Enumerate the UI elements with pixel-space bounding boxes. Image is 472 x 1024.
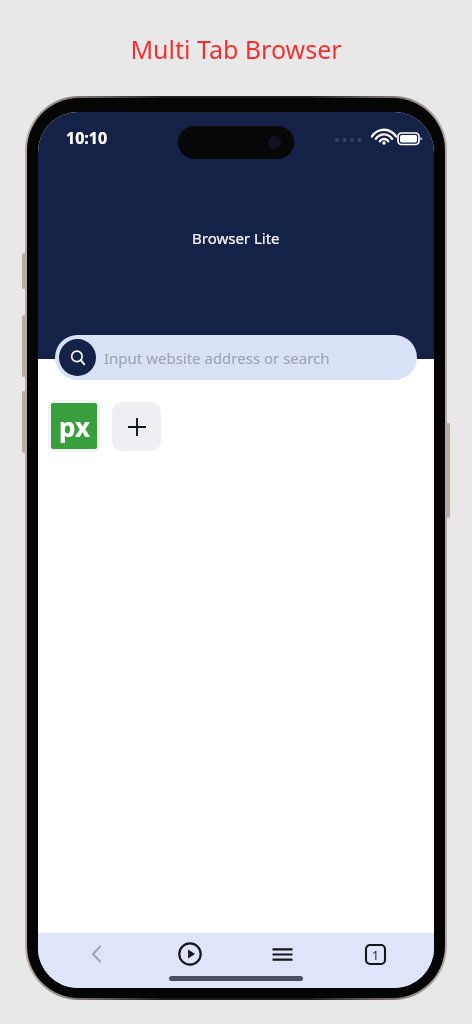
button[interactable]: Tabs, 1 open [335,933,415,975]
staticText: 1 [372,947,379,963]
staticText: 10:10 [66,127,108,149]
button[interactable]: Home [150,933,230,975]
button[interactable]: px [48,400,100,452]
staticText: Multi Tab Browser [130,32,342,66]
staticText: px [59,409,90,444]
button[interactable]: Add shortcut [112,402,161,451]
button[interactable]: Menu [242,933,322,975]
button[interactable]: Back [57,933,137,975]
staticText: Input website address or search [104,348,330,368]
button[interactable]: Input website address or search [55,335,417,380]
staticText: Browser Lite [192,228,280,248]
